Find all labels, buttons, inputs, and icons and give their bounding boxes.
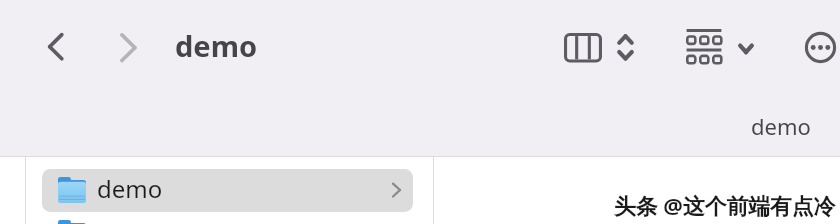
button[interactable]: More options xyxy=(801,28,840,67)
button[interactable]: Forward xyxy=(105,29,141,65)
staticText: 头条 @这个前端有点冷 xyxy=(614,191,836,221)
button[interactable]: Sort order xyxy=(612,30,640,66)
button[interactable]: Show grouping options xyxy=(732,36,760,60)
button[interactable]: demo xyxy=(42,169,413,212)
staticText: demo xyxy=(751,111,811,141)
staticText: demo xyxy=(175,26,258,65)
button[interactable]: Column view xyxy=(556,25,609,70)
staticText: 头条 @这个前端有点冷 xyxy=(613,190,835,220)
staticText: demo xyxy=(97,172,163,205)
button[interactable]: Back xyxy=(32,30,68,66)
button[interactable]: Group by xyxy=(680,23,728,71)
